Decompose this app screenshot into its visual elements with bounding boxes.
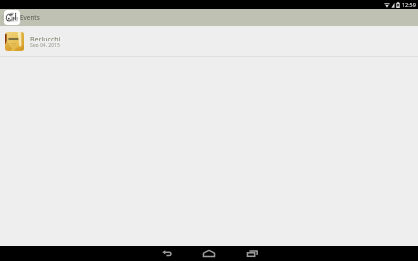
button[interactable]: Back <box>153 246 182 261</box>
button[interactable]: Berlucchi <box>0 26 418 57</box>
staticText: Berlucchi <box>30 35 61 41</box>
staticText: Sep 04, 2015 <box>30 42 60 47</box>
button[interactable]: Navigate up <box>0 9 20 26</box>
button[interactable]: Recent apps <box>238 246 266 261</box>
button[interactable]: Home <box>195 246 223 261</box>
staticText: 12:59 <box>402 1 416 8</box>
staticText: Events <box>20 13 40 22</box>
